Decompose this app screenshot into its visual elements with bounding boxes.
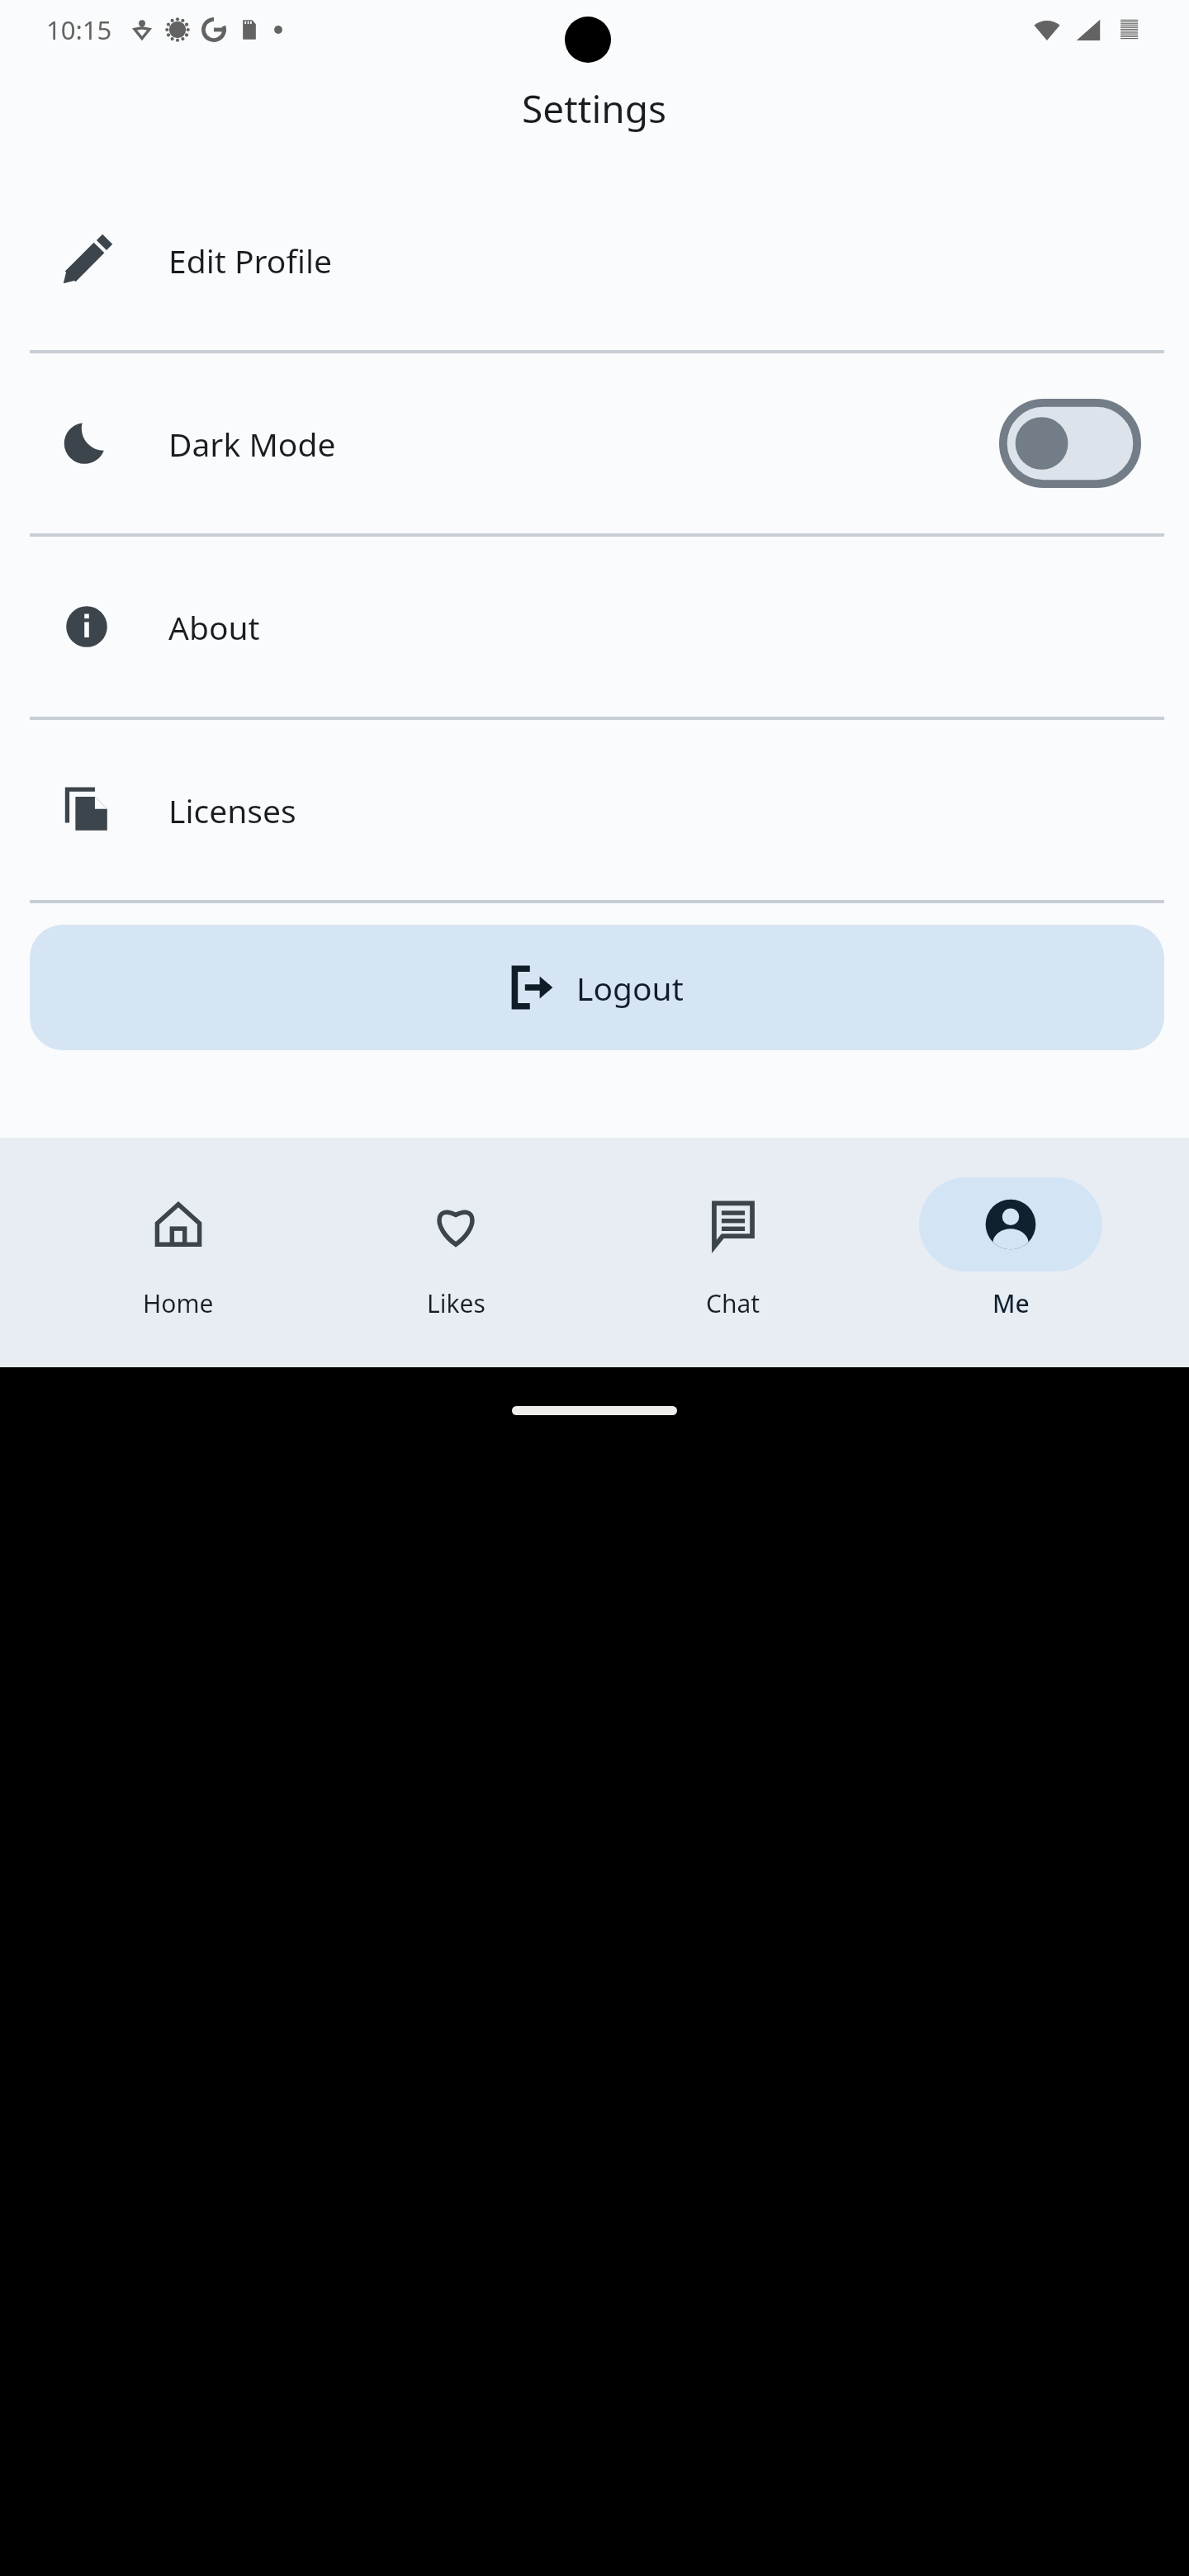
staticText: Settings [522, 83, 667, 135]
staticText: Chat [706, 1286, 760, 1320]
staticText: Me [992, 1286, 1030, 1320]
staticText: 10:15 [46, 12, 112, 47]
button[interactable]: Logout [30, 925, 1164, 1050]
button[interactable]: Edit Profile [0, 170, 1189, 350]
staticText: Dark Mode [168, 422, 999, 466]
button[interactable]: Me [912, 1138, 1110, 1320]
staticText: Likes [427, 1286, 486, 1320]
button[interactable]: Licenses [0, 720, 1189, 900]
button[interactable]: Likes [357, 1138, 555, 1320]
staticText: Licenses [168, 788, 1141, 832]
button[interactable]: Home [79, 1138, 277, 1320]
staticText: Home [143, 1286, 214, 1320]
button[interactable]: Dark Mode [0, 353, 1189, 533]
staticText: Edit Profile [168, 239, 1141, 282]
staticText: About [168, 605, 1141, 649]
button[interactable]: Chat [634, 1138, 832, 1320]
staticText: Logout [576, 966, 684, 1010]
button[interactable]: Dark Mode toggle [999, 399, 1141, 488]
button[interactable]: About [0, 537, 1189, 717]
